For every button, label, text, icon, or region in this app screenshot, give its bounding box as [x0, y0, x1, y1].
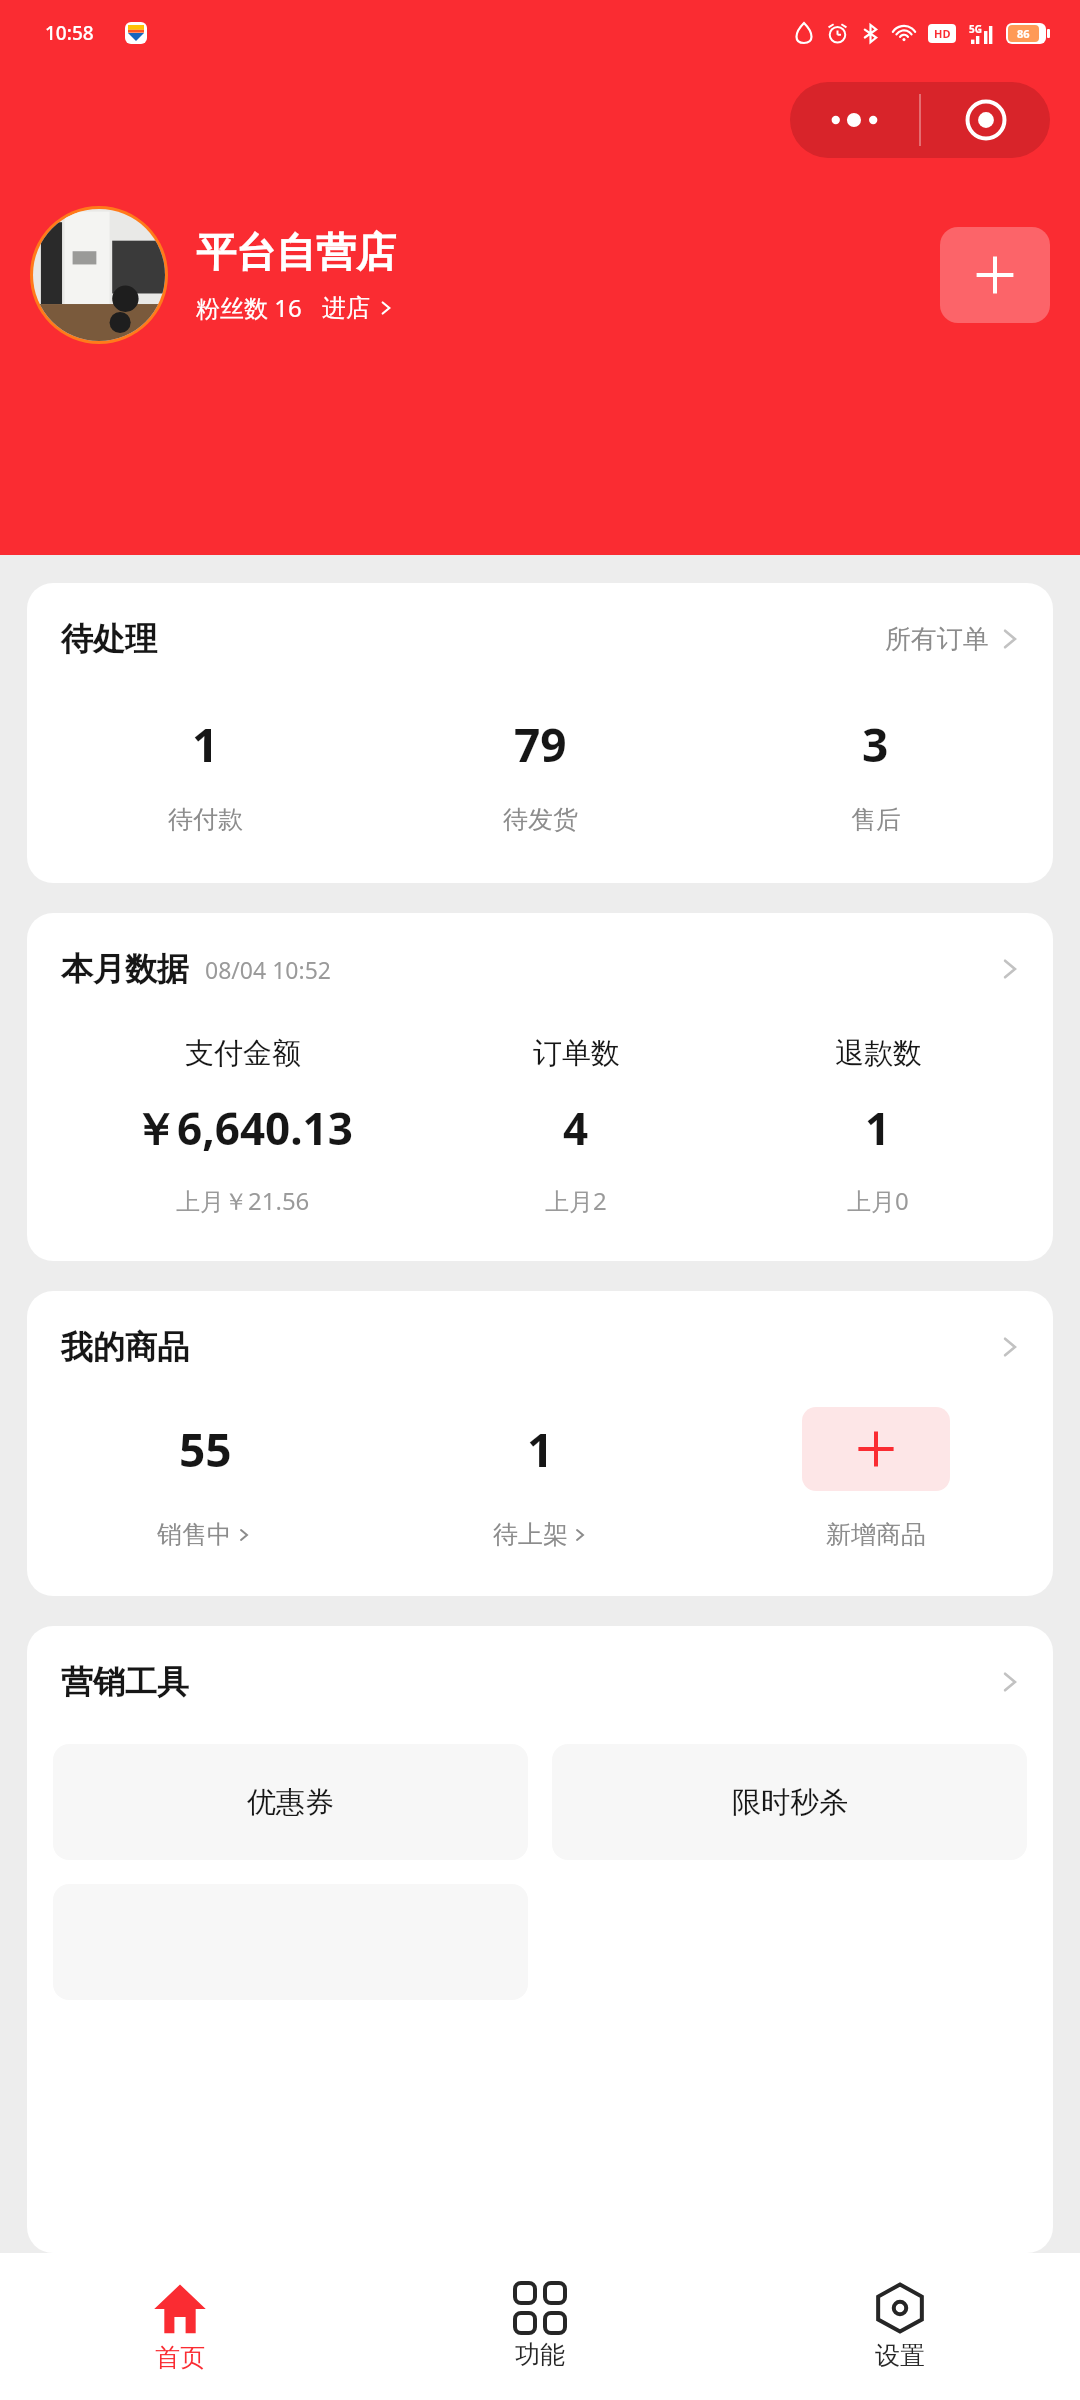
- staticText: 1: [192, 713, 219, 776]
- button[interactable]: 限时秒杀: [552, 1744, 1027, 1860]
- staticText: 我的商品: [61, 1327, 189, 1367]
- staticText: 退款数: [835, 1035, 922, 1072]
- staticText: 上月￥21.56: [176, 1184, 310, 1217]
- staticText: 08/04 10:52: [205, 954, 331, 985]
- staticText: 4: [563, 1098, 589, 1158]
- button[interactable]: 功能: [360, 2253, 720, 2400]
- staticText: ￥6,640.13: [133, 1098, 353, 1158]
- staticText: 售后: [851, 804, 901, 835]
- button[interactable]: 首页: [0, 2253, 360, 2400]
- staticText: 10:58: [45, 20, 94, 46]
- staticText: 进店: [322, 293, 370, 323]
- staticText: 新增商品: [826, 1519, 926, 1550]
- button[interactable]: 营销工具: [61, 1662, 1025, 1702]
- button[interactable]: Target: [921, 82, 1050, 158]
- button[interactable]: Add: [940, 227, 1050, 323]
- button[interactable]: More: [790, 82, 919, 158]
- staticText: HD: [934, 26, 951, 41]
- staticText: 55: [179, 1418, 232, 1481]
- staticText: 订单数: [533, 1035, 620, 1072]
- staticText: 销售中: [157, 1519, 232, 1550]
- staticText: 设置: [875, 2340, 925, 2371]
- staticText: 5G: [969, 22, 982, 36]
- button[interactable]: 我的商品: [61, 1327, 1025, 1367]
- staticText: 支付金额: [185, 1035, 301, 1072]
- staticText: 所有订单: [885, 623, 989, 656]
- staticText: 首页: [155, 2342, 205, 2373]
- staticText: 营销工具: [61, 1662, 189, 1702]
- button[interactable]: 设置: [720, 2253, 1080, 2400]
- button[interactable]: 55: [37, 1407, 373, 1550]
- staticText: 1: [865, 1098, 891, 1158]
- button[interactable]: 优惠券: [53, 1744, 528, 1860]
- staticText: 待上架: [493, 1519, 568, 1550]
- staticText: 上月0: [847, 1184, 909, 1217]
- staticText: 79: [514, 713, 567, 776]
- staticText: 平台自营店: [196, 227, 396, 277]
- staticText: 待付款: [168, 804, 243, 835]
- staticText: 待处理: [61, 619, 157, 659]
- staticText: 待发货: [503, 804, 578, 835]
- staticText: 优惠券: [247, 1784, 334, 1821]
- button[interactable]: 本月数据: [61, 949, 1025, 989]
- button[interactable]: 1: [37, 713, 373, 835]
- button[interactable]: 待处理: [61, 619, 1025, 659]
- staticText: 1: [527, 1418, 554, 1481]
- button[interactable]: 3: [708, 713, 1043, 835]
- staticText: 本月数据: [61, 949, 189, 989]
- button[interactable]: 新增商品: [708, 1407, 1043, 1550]
- staticText: 限时秒杀: [732, 1784, 848, 1821]
- staticText: 上月2: [545, 1184, 607, 1217]
- button[interactable]: 1: [373, 1407, 708, 1550]
- staticText: 86: [1017, 26, 1030, 41]
- button[interactable]: Shop avatar: [33, 209, 165, 341]
- button[interactable]: 79: [373, 713, 708, 835]
- staticText: 粉丝数 16: [196, 291, 302, 324]
- button[interactable]: 粉丝数 16: [196, 291, 396, 324]
- staticText: 3: [862, 713, 889, 776]
- staticText: 功能: [515, 2339, 565, 2370]
